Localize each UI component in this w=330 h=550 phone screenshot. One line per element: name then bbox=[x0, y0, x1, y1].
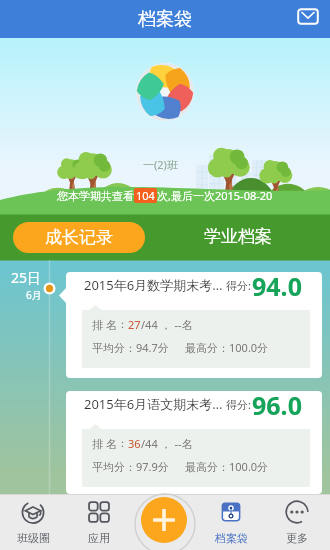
staticText: 档案袋 bbox=[215, 531, 248, 545]
staticText: 应用 bbox=[88, 531, 110, 545]
staticText: 104 bbox=[136, 188, 155, 203]
staticText: 排 名 bbox=[92, 317, 117, 332]
staticText: 27 bbox=[128, 317, 141, 332]
staticText: ： bbox=[117, 436, 128, 450]
staticText: 平均分：97.9分 bbox=[92, 459, 169, 474]
staticText: 学业档案 bbox=[204, 226, 272, 247]
staticText: 36 bbox=[128, 436, 141, 451]
staticText: 最高分：100.0分 bbox=[185, 340, 269, 355]
staticText: 一(2)班 bbox=[143, 157, 178, 172]
staticText: 96.0 bbox=[252, 391, 302, 422]
button[interactable]: 应用 bbox=[66, 494, 132, 550]
button[interactable]: 2015年6月语文期末考… bbox=[66, 391, 322, 494]
staticText: 班级圈 bbox=[17, 531, 50, 545]
staticText: 2015年6月语文期末考… bbox=[84, 395, 223, 413]
button[interactable]: 更多 bbox=[264, 494, 330, 550]
button[interactable]: 成长记录 bbox=[13, 222, 145, 253]
staticText: 更多 bbox=[286, 531, 308, 545]
staticText: 得分: bbox=[226, 278, 251, 293]
button[interactable]: Add bbox=[141, 497, 187, 543]
staticText: 档案袋 bbox=[138, 8, 192, 31]
staticText: 排 名 bbox=[92, 436, 117, 451]
staticText: /44 ， --名 bbox=[141, 436, 193, 451]
staticText: 2015年6月数学期末考… bbox=[84, 276, 223, 294]
staticText: 得分: bbox=[226, 397, 251, 412]
staticText: 25日 bbox=[11, 268, 42, 287]
staticText: 最高分：100.0分 bbox=[185, 459, 269, 474]
staticText: ： bbox=[117, 317, 128, 331]
staticText: 6月 bbox=[26, 288, 42, 302]
button[interactable]: Messages bbox=[292, 1, 324, 31]
staticText: /44 ， --名 bbox=[141, 317, 193, 332]
staticText: 平均分：94.7分 bbox=[92, 340, 169, 355]
staticText: 成长记录 bbox=[45, 227, 113, 248]
button[interactable]: 档案袋 bbox=[198, 494, 264, 550]
button[interactable]: 2015年6月数学期末考… bbox=[59, 272, 322, 378]
button[interactable]: 班级圈 bbox=[0, 494, 66, 550]
staticText: 次,最后一次2015-08-20 bbox=[157, 188, 273, 203]
button[interactable]: 学业档案 bbox=[145, 222, 330, 251]
button[interactable]: School logo bbox=[136, 63, 194, 121]
staticText: 您本学期共查看 bbox=[57, 189, 134, 203]
staticText: 94.0 bbox=[252, 272, 302, 303]
